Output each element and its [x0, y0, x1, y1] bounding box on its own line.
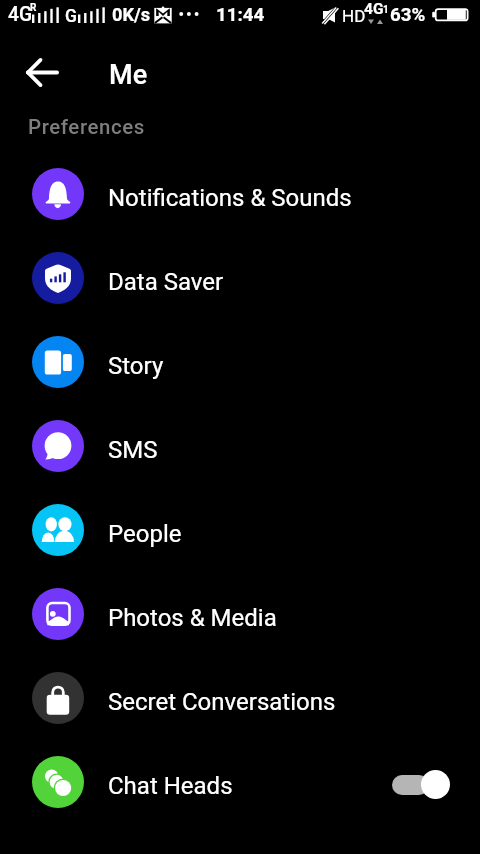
button[interactable]: Chat Heads toggle	[392, 767, 451, 798]
staticText: 4G	[8, 3, 33, 26]
button[interactable]: Data Saver	[0, 236, 480, 320]
staticText: HD	[342, 6, 366, 26]
staticText: 1	[383, 4, 389, 16]
button[interactable]: People	[0, 488, 480, 572]
staticText: People	[108, 520, 182, 548]
staticText: Data Saver	[108, 268, 224, 296]
staticText: Photos & Media	[108, 604, 277, 632]
staticText: 0K/s	[112, 4, 151, 25]
button[interactable]: Secret Conversations	[0, 656, 480, 740]
button[interactable]: Chat Heads	[0, 740, 480, 824]
staticText: 11:44	[216, 4, 265, 26]
button[interactable]: SMS	[0, 404, 480, 488]
staticText: Notifications & Sounds	[108, 184, 352, 212]
staticText: Story	[108, 352, 164, 380]
button[interactable]: Notifications & Sounds	[0, 152, 480, 236]
staticText: SMS	[108, 436, 158, 464]
staticText: G	[65, 6, 77, 27]
staticText: 4G	[364, 0, 384, 18]
staticText: Preferences	[28, 115, 145, 139]
button[interactable]: Photos & Media	[0, 572, 480, 656]
staticText: Me	[109, 59, 148, 91]
staticText: R	[30, 2, 37, 14]
staticText: 63%	[390, 4, 426, 26]
staticText: Secret Conversations	[108, 688, 336, 716]
staticText: Chat Heads	[108, 772, 233, 800]
button[interactable]: Back	[18, 48, 66, 96]
button[interactable]: Story	[0, 320, 480, 404]
